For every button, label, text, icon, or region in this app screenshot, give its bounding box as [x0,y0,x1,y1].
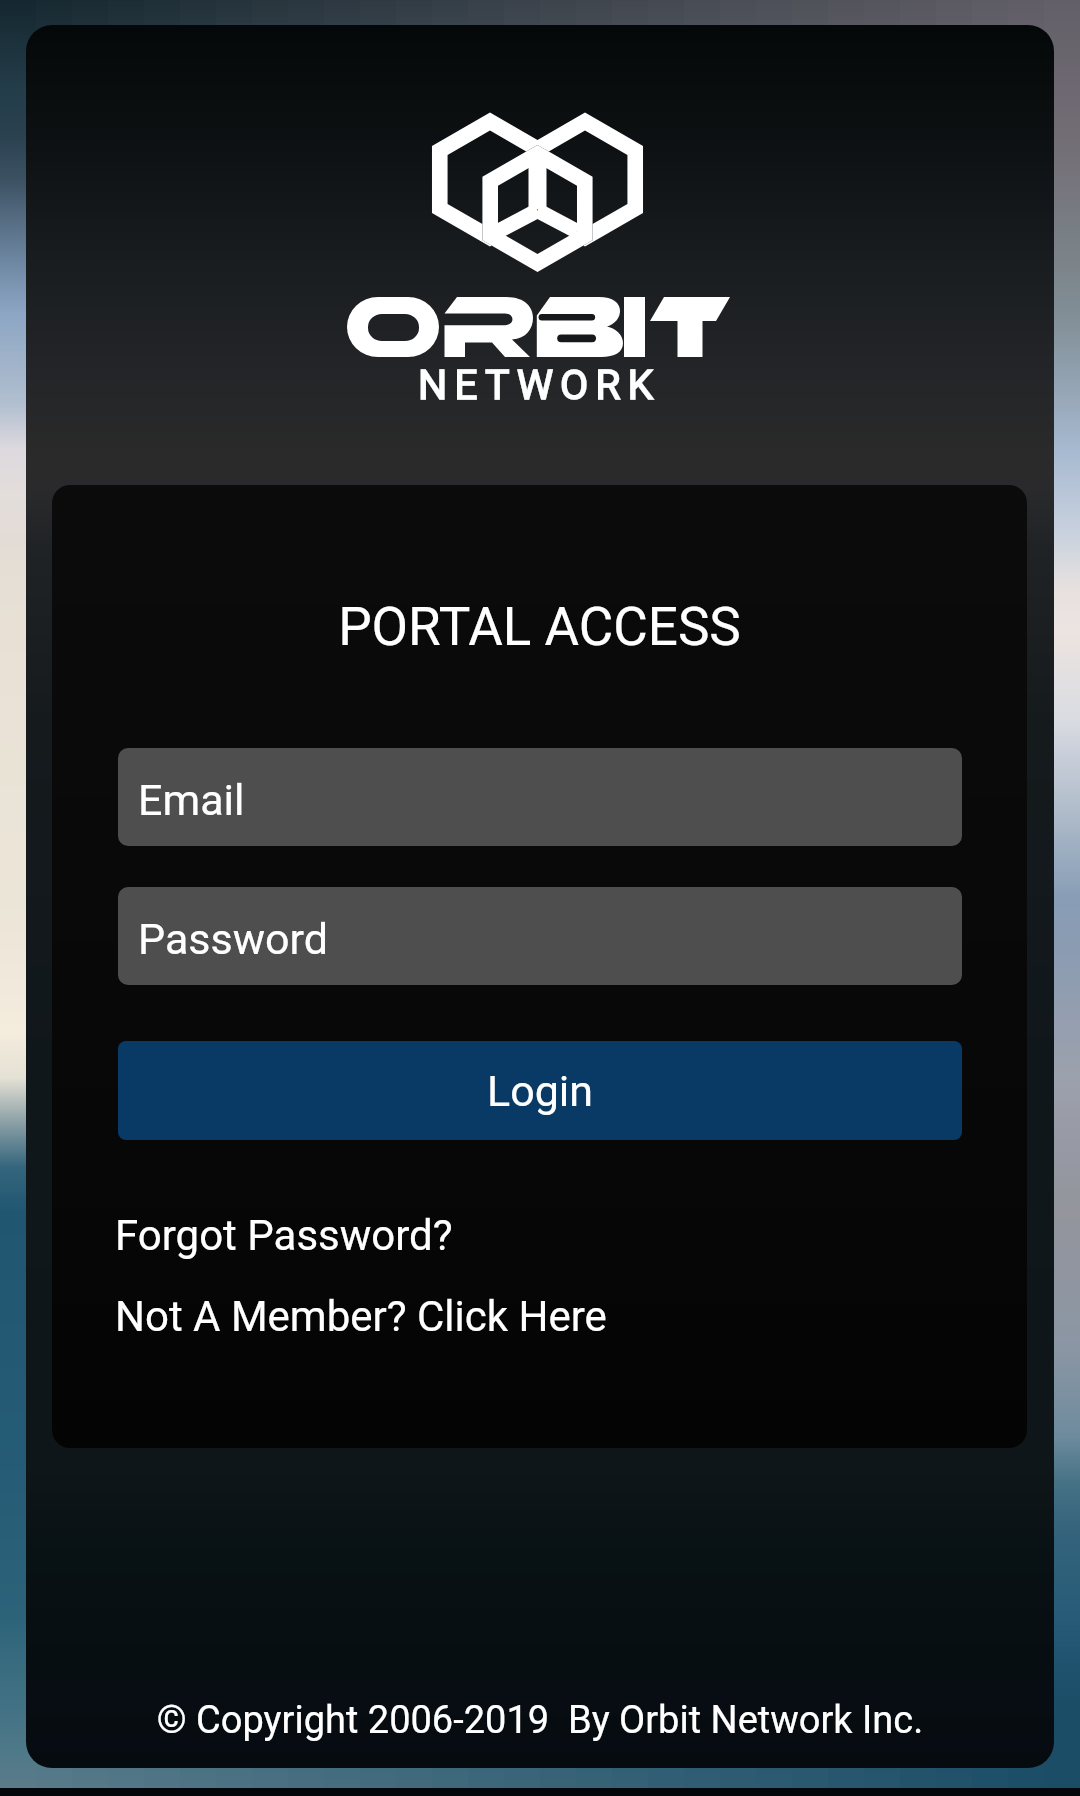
staticText: Password [138,914,328,964]
button[interactable]: Email [118,748,962,846]
staticText: Forgot Password? [115,1211,453,1260]
staticText: © Copyright 2006-2019 By Orbit Network I… [0,1698,1080,1743]
staticText: Login [487,1066,594,1116]
button[interactable]: Login [118,1041,962,1140]
staticText: PORTAL ACCESS [52,596,1027,658]
staticText: Email [138,775,245,825]
button[interactable]: Forgot Password? [115,1211,453,1260]
button[interactable]: Not A Member? Click Here [115,1292,607,1341]
button[interactable]: Password [118,887,962,985]
staticText: Not A Member? Click Here [115,1292,607,1341]
staticText: NETWORK [418,361,661,409]
